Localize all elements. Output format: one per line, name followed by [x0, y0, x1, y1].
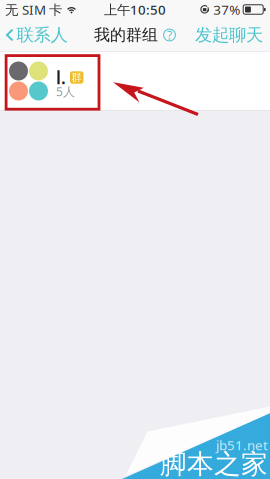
staticText: 发起聊天: [195, 24, 263, 46]
button[interactable]: 说明: [163, 28, 176, 41]
staticText: 群: [71, 71, 82, 84]
staticText: 我的群组: [94, 25, 158, 45]
staticText: jb51.net: [216, 436, 268, 454]
staticText: 联系人: [16, 24, 67, 46]
button[interactable]: 联系人: [0, 19, 73, 51]
button[interactable]: 发起聊天: [189, 19, 270, 51]
staticText: 无 SIM 卡: [5, 1, 62, 18]
button[interactable]: l.: [0, 51, 270, 110]
staticText: 37%: [213, 1, 240, 18]
staticText: ?: [167, 27, 172, 43]
staticText: l.: [56, 66, 66, 89]
staticText: 上午10:50: [104, 1, 166, 18]
staticText: 5人: [56, 83, 75, 99]
staticText: 脚本之家: [160, 448, 268, 479]
